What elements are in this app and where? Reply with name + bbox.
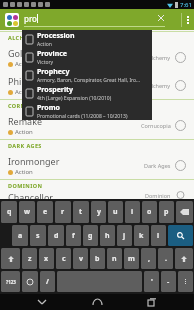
button[interactable]: del	[176, 201, 193, 223]
button[interactable]: Province	[22, 48, 152, 66]
staticText: n	[112, 254, 117, 264]
button[interactable]: Hide keyboard	[29, 294, 55, 310]
button[interactable]: v	[73, 248, 88, 269]
staticText: Philosopher's Stone	[8, 75, 92, 87]
button[interactable]: m	[124, 248, 139, 269]
staticText: -	[167, 277, 170, 287]
button[interactable]: k	[134, 225, 149, 246]
staticText: ?123	[6, 279, 16, 285]
staticText: b	[95, 254, 100, 264]
staticText: o	[147, 207, 152, 217]
button[interactable]: h	[100, 225, 115, 246]
staticText: Action	[37, 41, 52, 48]
staticText: Dark Ages	[144, 162, 171, 169]
staticText: j	[123, 231, 126, 241]
staticText: k	[139, 231, 144, 241]
button[interactable]: Ironmonger	[0, 151, 194, 179]
button[interactable]: r	[55, 201, 71, 223]
button[interactable]: shift	[175, 248, 193, 269]
staticText: ALCHEMY	[8, 34, 38, 41]
staticText: '	[151, 277, 153, 287]
button[interactable]: b	[90, 248, 105, 269]
button[interactable]: ,	[141, 248, 156, 269]
staticText: Prophecy	[37, 67, 70, 77]
staticText: Action	[15, 168, 33, 176]
staticText: Procession	[37, 31, 75, 41]
staticText: Victory	[37, 59, 54, 66]
button[interactable]: x	[39, 248, 54, 269]
staticText: ,	[148, 254, 150, 264]
button[interactable]: a	[12, 225, 28, 246]
staticText: y	[97, 207, 101, 217]
staticText: e	[43, 207, 48, 217]
button[interactable]: f	[66, 225, 81, 246]
button[interactable]: shift	[1, 248, 20, 269]
button[interactable]: w	[19, 201, 35, 223]
button[interactable]: i	[125, 201, 140, 223]
button[interactable]: Procession	[22, 30, 152, 48]
button[interactable]: t	[73, 201, 89, 223]
button[interactable]: n	[107, 248, 122, 269]
button[interactable]: search	[168, 225, 193, 246]
button[interactable]: c	[56, 248, 71, 269]
staticText: p	[164, 207, 169, 217]
staticText: 4th (Large) Expansion (10/2010)	[37, 95, 112, 102]
staticText: v	[79, 254, 83, 264]
button[interactable]: p	[159, 201, 174, 223]
button[interactable]: Recents	[139, 294, 165, 310]
staticText: Province	[37, 49, 68, 59]
button[interactable]: l	[151, 225, 166, 246]
staticText: z	[28, 254, 32, 264]
staticText: Dominion	[145, 192, 171, 199]
button[interactable]: Clear	[155, 12, 167, 24]
button[interactable]: '	[144, 271, 159, 292]
staticText: Promo	[37, 103, 60, 113]
staticText: x	[44, 254, 49, 264]
staticText: DOMINION	[8, 182, 43, 189]
button[interactable]: App icon	[3, 11, 20, 28]
staticText: s	[36, 231, 40, 241]
button[interactable]: Golem	[0, 43, 194, 71]
button[interactable]: Prophecy	[22, 66, 152, 84]
button[interactable]: More options	[182, 9, 194, 30]
button[interactable]: dots	[178, 271, 193, 292]
staticText: d	[54, 231, 59, 241]
button[interactable]: y	[91, 201, 106, 223]
button[interactable]: e	[37, 201, 53, 223]
staticText: l	[157, 231, 160, 241]
button[interactable]: u	[108, 201, 123, 223]
button[interactable]: g	[83, 225, 98, 246]
staticText: r	[61, 207, 65, 217]
button[interactable]: ?123	[1, 271, 20, 292]
staticText: Ironmonger	[8, 155, 60, 167]
button[interactable]: Philosopher's Stone	[0, 71, 194, 99]
staticText: Armory, Baron, Conspirator, Great Hall, …	[37, 77, 141, 84]
staticText: w	[24, 207, 30, 217]
button[interactable]: .	[158, 248, 173, 269]
button[interactable]: d	[48, 225, 64, 246]
button[interactable]: -	[161, 271, 176, 292]
staticText: q	[7, 207, 12, 217]
button[interactable]: j	[117, 225, 132, 246]
staticText: Golem	[8, 47, 36, 59]
button[interactable]: s	[30, 225, 46, 246]
button[interactable]: o	[142, 201, 157, 223]
button[interactable]: z	[22, 248, 37, 269]
button[interactable]: Promo	[22, 102, 152, 120]
staticText: g	[88, 231, 93, 241]
staticText: Alchemy	[148, 54, 171, 61]
staticText: a	[18, 231, 23, 241]
button[interactable]: Chancellor	[0, 191, 194, 199]
button[interactable]: Prosperity	[22, 84, 152, 102]
staticText: Action	[15, 128, 33, 136]
button[interactable]: /	[40, 271, 55, 292]
button[interactable]: Remake	[0, 111, 194, 139]
staticText: CORNUCOPIA	[8, 102, 50, 109]
button[interactable]: Home	[84, 294, 110, 310]
button[interactable]: q	[1, 201, 17, 223]
staticText: u	[113, 207, 118, 217]
staticText: f	[72, 231, 75, 241]
button[interactable]: globe	[22, 271, 38, 292]
staticText: m	[128, 254, 135, 264]
